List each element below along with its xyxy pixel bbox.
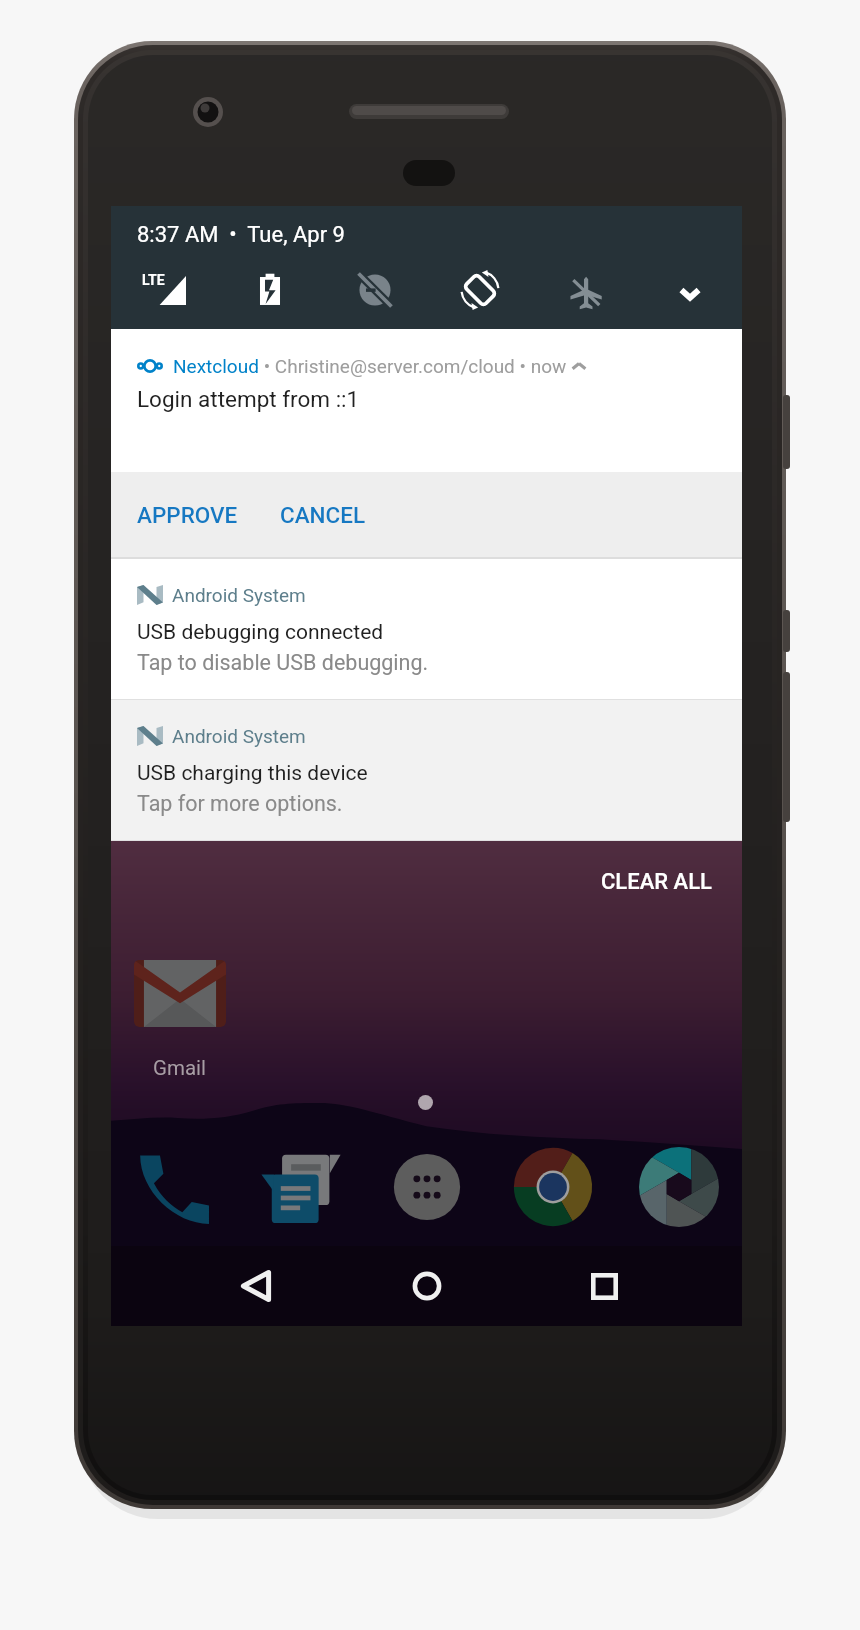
staticText: USB debugging connected: [137, 620, 384, 645]
staticText: CLEAR ALL: [601, 869, 712, 895]
staticText: 8:37 AM • Tue, Apr 9: [137, 222, 345, 248]
button[interactable]: CLEAR ALL: [583, 857, 730, 907]
staticText: Gmail: [153, 1056, 207, 1080]
staticText: Android System: [172, 584, 306, 606]
button[interactable]: Battery charging: [217, 264, 322, 316]
staticText: APPROVE: [137, 502, 238, 528]
button[interactable]: Recent apps: [564, 1246, 644, 1326]
button[interactable]: Home: [387, 1246, 467, 1326]
button[interactable]: Auto rotate: [427, 264, 532, 316]
button[interactable]: Android System: [111, 559, 742, 699]
button[interactable]: Nextcloud: [111, 329, 742, 472]
staticText: Login attempt from ::1: [137, 386, 360, 412]
button[interactable]: Signal strength LTE: [111, 264, 217, 316]
button[interactable]: Do not disturb off: [322, 264, 427, 316]
staticText: CANCEL: [280, 502, 366, 528]
button[interactable]: Camera: [616, 1141, 742, 1233]
staticText: Nextcloud: [173, 355, 259, 377]
button[interactable]: Expand quick settings: [637, 264, 742, 316]
button[interactable]: Apps: [364, 1141, 490, 1233]
staticText: • Christine@server.com/cloud • now: [259, 355, 571, 377]
button[interactable]: Messages: [238, 1141, 364, 1233]
button[interactable]: Phone: [111, 1141, 238, 1233]
button[interactable]: Gmail: [134, 960, 226, 1080]
button[interactable]: Airplane mode off: [532, 264, 637, 316]
staticText: Android System: [172, 725, 306, 747]
button[interactable]: Chrome: [490, 1141, 616, 1233]
button[interactable]: Back: [216, 1246, 296, 1326]
button[interactable]: APPROVE: [131, 492, 244, 538]
button[interactable]: CANCEL: [274, 492, 372, 538]
staticText: LTE: [142, 272, 165, 288]
staticText: Tap for more options.: [137, 791, 343, 816]
staticText: USB charging this device: [137, 761, 368, 786]
staticText: Tap to disable USB debugging.: [137, 650, 429, 675]
button[interactable]: Android System: [111, 700, 742, 840]
